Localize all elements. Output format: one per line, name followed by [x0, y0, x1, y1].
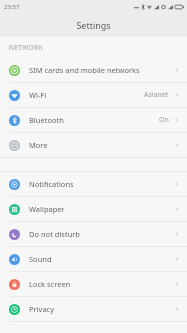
- staticText: Sound: [29, 254, 52, 264]
- staticText: On: [159, 115, 169, 125]
- button[interactable]: Notifications: [0, 172, 187, 196]
- staticText: Bluetooth: [29, 115, 64, 125]
- button[interactable]: More: [0, 133, 187, 157]
- staticText: Do not disturb: [29, 229, 80, 239]
- button[interactable]: Do not disturb: [0, 222, 187, 246]
- staticText: NETWORK: [9, 43, 44, 52]
- staticText: Settings: [76, 19, 111, 31]
- staticText: More: [29, 140, 48, 150]
- staticText: Notifications: [29, 179, 74, 189]
- button[interactable]: Privacy: [0, 297, 187, 321]
- staticText: Wi-Fi: [29, 90, 47, 100]
- staticText: SIM cards and mobile networks: [29, 65, 140, 75]
- button[interactable]: Wi-Fi: [0, 83, 187, 107]
- staticText: Lock screen: [29, 279, 71, 289]
- button[interactable]: Sound: [0, 247, 187, 271]
- staticText: 23:57: [4, 3, 20, 11]
- staticText: Asianet: [144, 90, 169, 100]
- staticText: Privacy: [29, 304, 55, 314]
- button[interactable]: Wallpaper: [0, 197, 187, 221]
- staticText: Wallpaper: [29, 204, 65, 214]
- button[interactable]: Bluetooth: [0, 108, 187, 132]
- button[interactable]: Lock screen: [0, 272, 187, 296]
- button[interactable]: SIM cards and mobile networks: [0, 58, 187, 82]
